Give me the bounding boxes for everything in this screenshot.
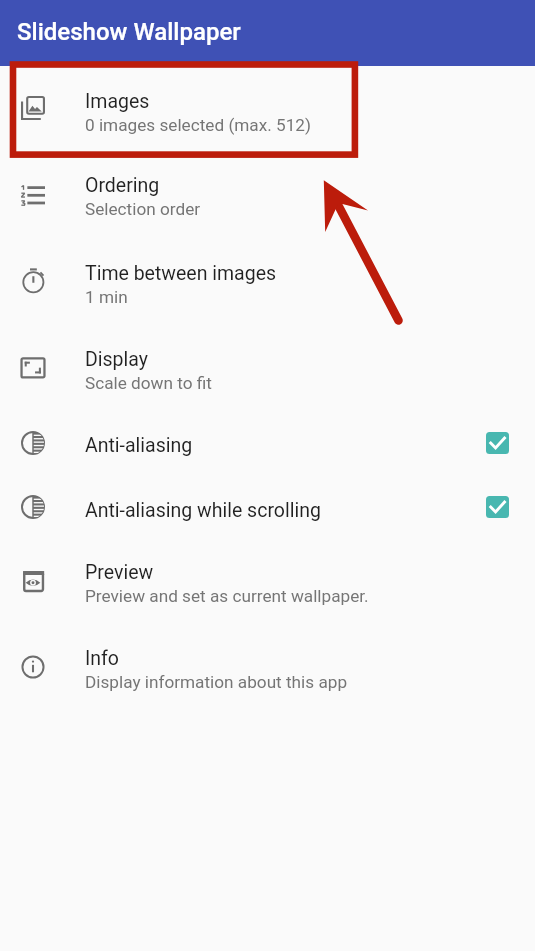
staticText: Selection order [85, 199, 201, 219]
staticText: Preview and set as current wallpaper. [85, 586, 369, 606]
button[interactable]: Anti-aliasing [0, 413, 535, 477]
staticText: Preview [85, 561, 154, 584]
staticText: Ordering [85, 174, 160, 197]
staticText: Anti-aliasing while scrolling [85, 499, 321, 522]
staticText: Time between images [85, 262, 277, 285]
button[interactable]: Slideshow Wallpaper [0, 0, 535, 66]
button[interactable]: Images [0, 66, 535, 153]
button[interactable]: Preview [0, 540, 535, 626]
staticText: 1 min [85, 287, 128, 307]
staticText: 0 images selected (max. 512) [85, 115, 311, 135]
button[interactable]: Toggle Anti-aliasing while scrolling [486, 496, 509, 518]
button[interactable]: Display [0, 328, 535, 413]
button[interactable]: Info [0, 626, 535, 712]
button[interactable]: Ordering [0, 153, 535, 240]
staticText: Display [85, 348, 148, 371]
staticText: Info [85, 647, 119, 670]
staticText: Display information about this app [85, 672, 348, 692]
staticText: Anti-aliasing [85, 434, 193, 457]
staticText: Slideshow Wallpaper [17, 18, 241, 46]
staticText: Scale down to fit [85, 373, 212, 393]
button[interactable]: Time between images [0, 240, 535, 328]
staticText: Images [85, 90, 150, 113]
button[interactable]: Anti-aliasing while scrolling [0, 477, 535, 540]
button[interactable]: Toggle Anti-aliasing [486, 432, 509, 454]
